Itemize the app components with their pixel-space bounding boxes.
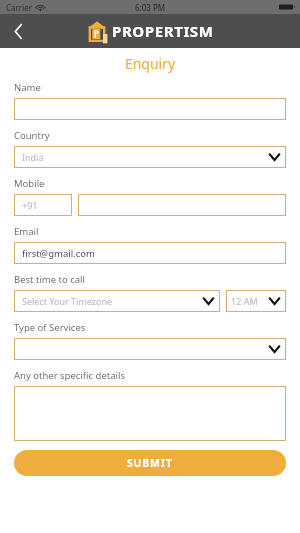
staticText: Any other specific details bbox=[14, 369, 125, 382]
staticText: Enquiry bbox=[14, 54, 286, 73]
staticText: Name bbox=[14, 81, 41, 94]
button[interactable] bbox=[78, 194, 286, 216]
button[interactable]: 12 AM bbox=[226, 290, 286, 312]
staticText: Country bbox=[14, 129, 50, 142]
button[interactable]: India bbox=[14, 146, 286, 168]
staticText: SUBMIT bbox=[127, 456, 173, 470]
button[interactable] bbox=[14, 98, 286, 120]
button[interactable]: Select Your Timezone bbox=[14, 290, 220, 312]
staticText: 6:03 PM bbox=[135, 2, 166, 13]
button[interactable]: +91 bbox=[14, 194, 72, 216]
button[interactable]: first@gmail.com bbox=[14, 242, 286, 264]
staticText: +91 bbox=[22, 199, 38, 211]
staticText: first@gmail.com bbox=[22, 247, 95, 260]
staticText: Carrier bbox=[6, 2, 33, 13]
staticText: Type of Services bbox=[14, 321, 86, 334]
button[interactable] bbox=[14, 338, 286, 360]
staticText: Mobile bbox=[14, 177, 45, 190]
staticText: 12 AM bbox=[231, 295, 258, 307]
button[interactable]: Back bbox=[0, 14, 36, 48]
staticText: India bbox=[22, 151, 44, 163]
staticText: Select Your Timezone bbox=[22, 295, 113, 307]
staticText: Best time to call bbox=[14, 273, 86, 286]
staticText: PROPERTISM bbox=[112, 21, 214, 41]
staticText: Email bbox=[14, 225, 39, 238]
button[interactable] bbox=[14, 386, 286, 441]
button[interactable]: SUBMIT bbox=[14, 450, 286, 476]
